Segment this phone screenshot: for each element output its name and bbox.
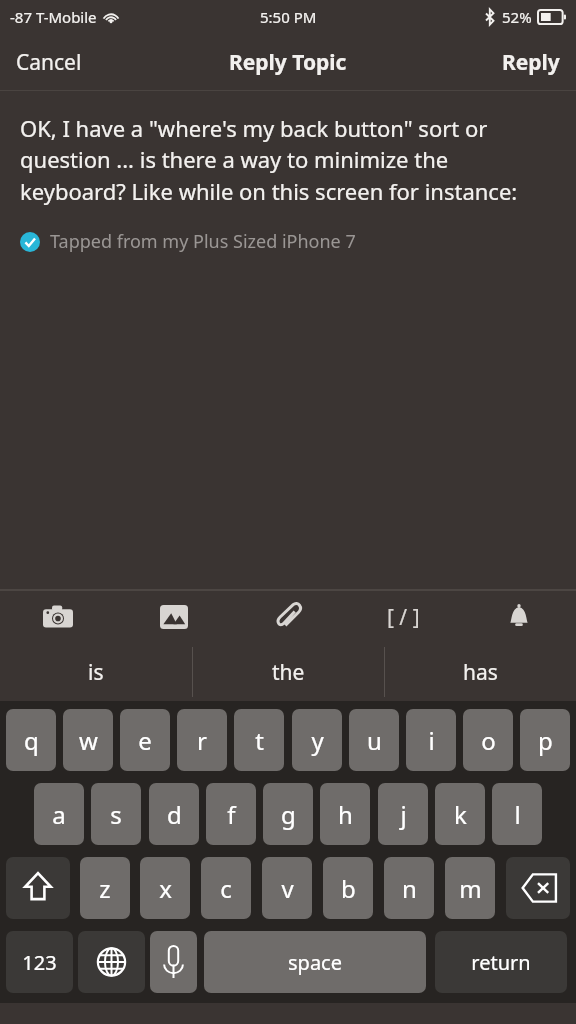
- staticText: 52%: [502, 7, 532, 27]
- button[interactable]: 123: [6, 931, 73, 993]
- button[interactable]: Switch keyboard: [78, 931, 145, 993]
- staticText: r: [197, 724, 207, 757]
- button[interactable]: f: [206, 783, 256, 845]
- staticText: u: [367, 724, 382, 757]
- button[interactable]: l: [492, 783, 542, 845]
- button[interactable]: y: [292, 709, 342, 771]
- button[interactable]: e: [120, 709, 170, 771]
- staticText: Tapped from my Plus Sized iPhone 7: [50, 229, 356, 254]
- staticText: c: [220, 872, 232, 905]
- button[interactable]: i: [406, 709, 456, 771]
- button[interactable]: c: [201, 857, 251, 919]
- staticText: p: [538, 724, 553, 757]
- staticText: f: [227, 798, 236, 831]
- staticText: Reply: [502, 48, 560, 77]
- staticText: 123: [22, 949, 57, 976]
- staticText: a: [52, 798, 66, 831]
- button[interactable]: p: [520, 709, 570, 771]
- staticText: k: [454, 798, 467, 831]
- staticText: j: [400, 798, 407, 831]
- button[interactable]: return: [435, 931, 567, 993]
- button[interactable]: Reply: [486, 40, 576, 85]
- staticText: m: [459, 872, 482, 905]
- button[interactable]: z: [80, 857, 130, 919]
- button[interactable]: g: [263, 783, 313, 845]
- staticText: g: [281, 798, 296, 831]
- button[interactable]: Attach file: [231, 591, 346, 643]
- button[interactable]: j: [378, 783, 428, 845]
- button[interactable]: Camera: [0, 591, 116, 643]
- button[interactable]: h: [320, 783, 370, 845]
- button[interactable]: u: [349, 709, 399, 771]
- button[interactable]: b: [323, 857, 373, 919]
- button[interactable]: Photo library: [116, 591, 231, 643]
- staticText: h: [338, 798, 353, 831]
- staticText: the: [272, 658, 305, 687]
- button[interactable]: r: [177, 709, 227, 771]
- staticText: q: [24, 724, 39, 757]
- button[interactable]: space: [204, 931, 426, 993]
- button[interactable]: d: [149, 783, 199, 845]
- staticText: b: [341, 872, 356, 905]
- button[interactable]: is: [0, 643, 192, 701]
- staticText: OK, I have a "where's my back button" so…: [20, 113, 558, 207]
- staticText: y: [311, 724, 324, 757]
- staticText: d: [167, 798, 182, 831]
- button[interactable]: s: [91, 783, 141, 845]
- staticText: e: [138, 724, 152, 757]
- staticText: i: [428, 724, 435, 757]
- staticText: z: [99, 872, 111, 905]
- staticText: [ / ]: [387, 603, 420, 632]
- staticText: s: [110, 798, 122, 831]
- button[interactable]: Dictate: [150, 931, 197, 993]
- button[interactable]: Shift: [6, 857, 70, 919]
- staticText: space: [288, 949, 342, 976]
- button[interactable]: x: [140, 857, 190, 919]
- staticText: v: [281, 872, 294, 905]
- staticText: t: [255, 724, 264, 757]
- button[interactable]: n: [384, 857, 434, 919]
- staticText: 5:50 PM: [260, 7, 317, 27]
- button[interactable]: k: [435, 783, 485, 845]
- staticText: has: [463, 658, 498, 687]
- button[interactable]: the: [193, 643, 384, 701]
- button[interactable]: w: [63, 709, 113, 771]
- button[interactable]: q: [6, 709, 56, 771]
- staticText: -87 T-Mobile: [10, 7, 97, 27]
- staticText: Reply Topic: [229, 48, 347, 77]
- button[interactable]: t: [234, 709, 284, 771]
- button[interactable]: OK, I have a "where's my back button" so…: [0, 91, 576, 589]
- button[interactable]: m: [445, 857, 495, 919]
- staticText: o: [481, 724, 496, 757]
- staticText: x: [159, 872, 172, 905]
- button[interactable]: [ / ]: [346, 591, 461, 643]
- staticText: l: [514, 798, 521, 831]
- button[interactable]: Cancel: [0, 40, 98, 85]
- button[interactable]: v: [262, 857, 312, 919]
- staticText: Cancel: [16, 48, 82, 77]
- button[interactable]: Notifications: [461, 591, 576, 643]
- button[interactable]: a: [34, 783, 84, 845]
- button[interactable]: has: [385, 643, 576, 701]
- staticText: is: [88, 658, 104, 687]
- staticText: w: [79, 724, 98, 757]
- staticText: n: [402, 872, 417, 905]
- button[interactable]: o: [463, 709, 513, 771]
- button[interactable]: Backspace: [506, 857, 570, 919]
- staticText: return: [471, 949, 531, 976]
